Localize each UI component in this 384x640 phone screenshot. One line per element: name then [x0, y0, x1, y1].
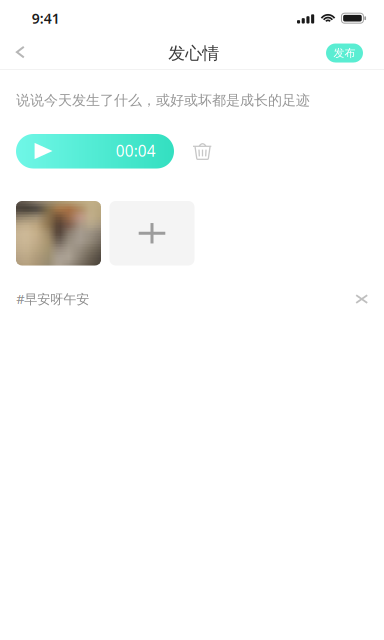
staticText: 00:04 [116, 140, 156, 161]
staticText: 9:41 [32, 9, 60, 28]
staticText: 发心情 [168, 43, 219, 64]
button[interactable]: 发布 [326, 43, 363, 62]
staticText: #早安呀午安 [16, 290, 89, 308]
button[interactable]: 00:04 [16, 134, 174, 168]
button[interactable]: Selected photo [16, 201, 101, 265]
button[interactable]: Back [0, 32, 42, 72]
staticText: 发布 [333, 46, 355, 60]
button[interactable]: Remove topic [355, 294, 368, 304]
button[interactable]: Delete voice clip [192, 143, 212, 160]
button[interactable]: Add photo [109, 201, 194, 265]
staticText: 说说今天发生了什么，或好或坏都是成长的足迹 [16, 91, 310, 109]
